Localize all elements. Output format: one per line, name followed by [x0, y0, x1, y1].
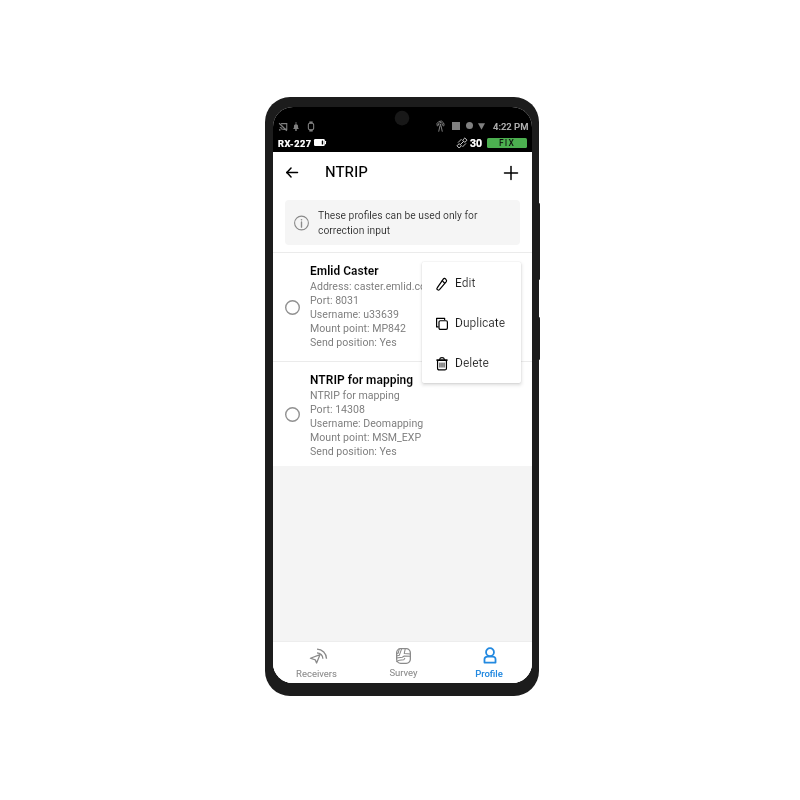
- staticText: Address: caster.emlid.com Port: 8031 Use…: [310, 280, 436, 349]
- button[interactable]: Back: [275, 152, 309, 193]
- button[interactable]: Profile: [446, 642, 532, 683]
- staticText: 30: [470, 137, 483, 149]
- button[interactable]: Select NTRIP for mapping: [285, 407, 300, 422]
- staticText: FIX: [499, 138, 516, 148]
- staticText: Delete: [455, 356, 489, 370]
- button[interactable]: GNSS fix status: [487, 138, 527, 148]
- staticText: Duplicate: [455, 316, 506, 330]
- button[interactable]: Receivers: [273, 642, 360, 683]
- staticText: NTRIP for mapping: [310, 373, 414, 387]
- staticText: Emlid Caster: [310, 264, 379, 278]
- staticText: These profiles can be used only for corr…: [318, 209, 511, 237]
- staticText: RX-227: [278, 138, 312, 149]
- staticText: NTRIP: [325, 163, 368, 181]
- staticText: 4:22 PM: [493, 121, 529, 132]
- button[interactable]: Select Emlid Caster: [285, 300, 300, 315]
- staticText: Receivers: [296, 668, 337, 679]
- staticText: Survey: [389, 667, 418, 678]
- button[interactable]: Select NTRIP for mapping: [273, 362, 532, 466]
- button[interactable]: Delete: [422, 343, 521, 383]
- staticText: Edit: [455, 276, 476, 290]
- button[interactable]: Duplicate: [422, 303, 521, 343]
- staticText: Profile: [475, 668, 503, 679]
- button[interactable]: Edit: [422, 263, 521, 303]
- button[interactable]: Power: [535, 317, 540, 360]
- staticText: NTRIP for mapping Port: 14308 Username: …: [310, 389, 424, 458]
- button[interactable]: Add profile: [494, 152, 528, 193]
- button[interactable]: Survey: [360, 642, 446, 683]
- button[interactable]: Select Emlid Caster: [273, 253, 532, 361]
- button[interactable]: Volume: [535, 203, 540, 280]
